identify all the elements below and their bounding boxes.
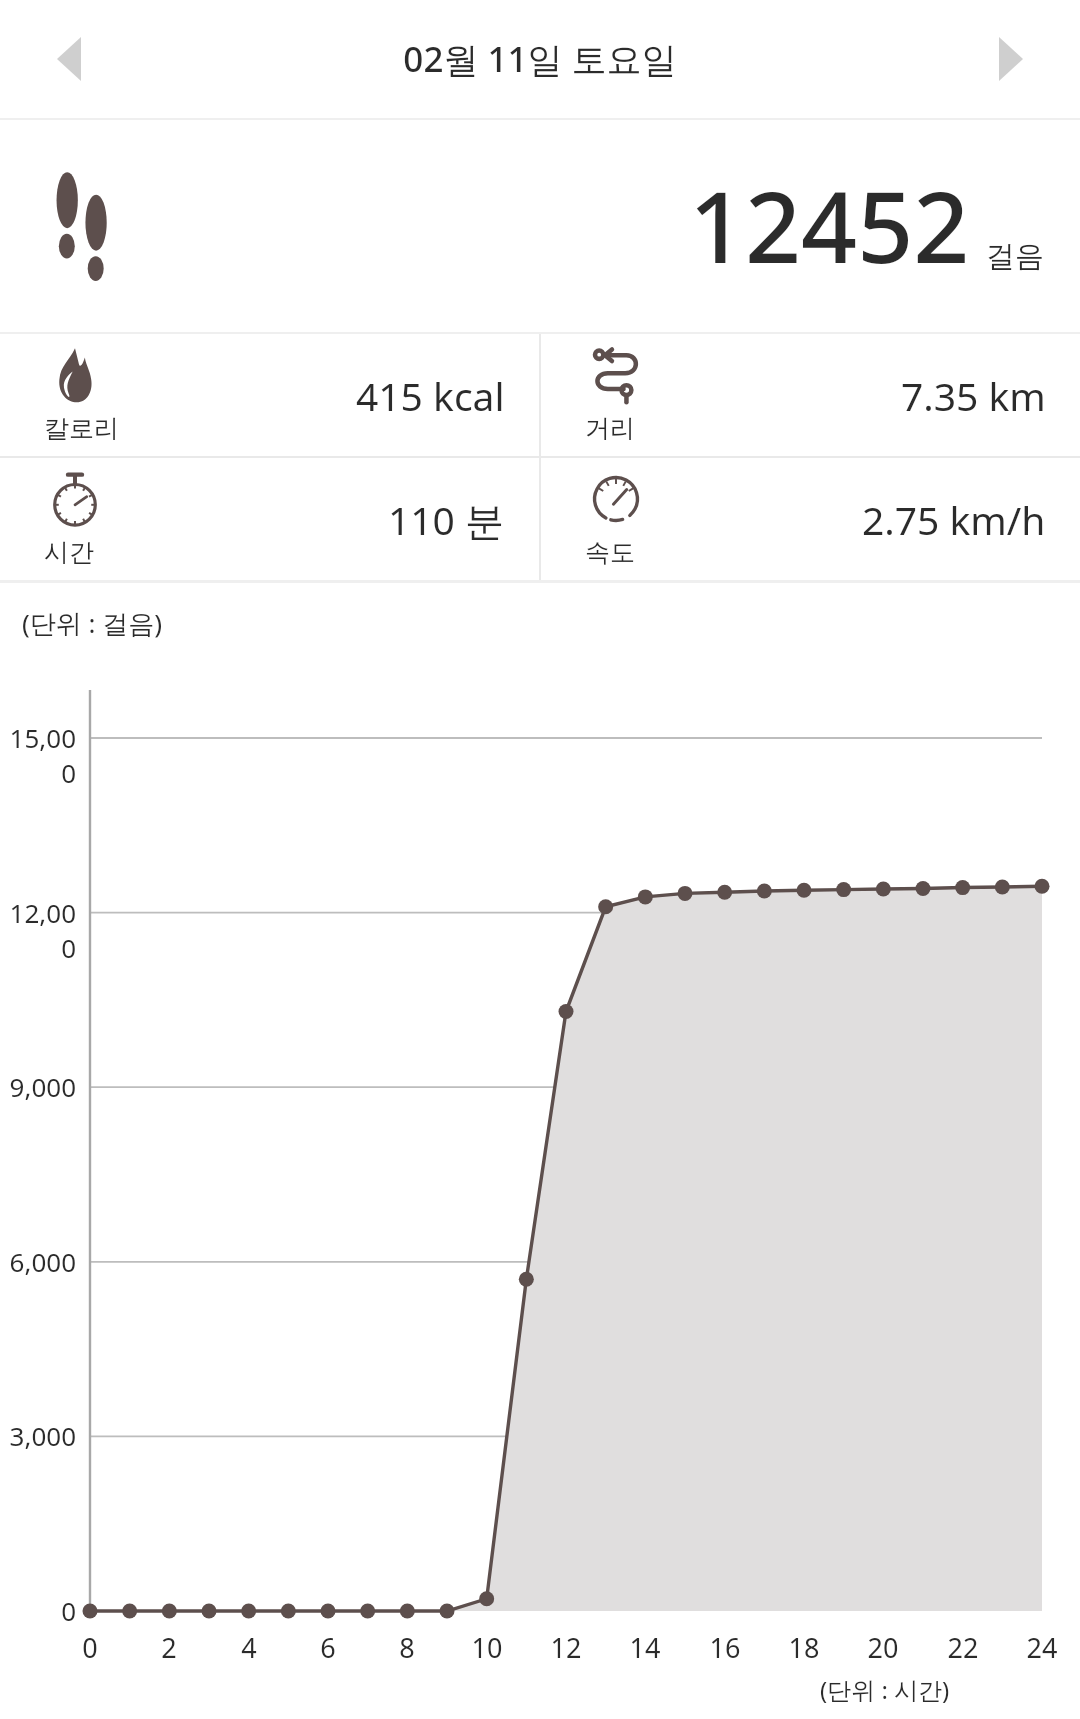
staticText: 칼로리	[44, 413, 119, 444]
staticText: 20	[853, 1629, 913, 1666]
staticText: 2	[139, 1629, 199, 1666]
staticText: 415 kcal	[356, 369, 505, 422]
staticText: 12,000	[0, 895, 76, 965]
staticText: 10	[457, 1629, 517, 1666]
staticText: 18	[774, 1629, 834, 1666]
staticText: 0	[0, 1593, 76, 1628]
button[interactable]: 속도	[541, 458, 1080, 580]
staticText: 16	[695, 1629, 755, 1666]
button[interactable]: 칼로리	[0, 334, 539, 456]
staticText: 9,000	[0, 1069, 76, 1104]
staticText: 7.35 km	[901, 369, 1046, 422]
staticText: 2.75 km/h	[862, 493, 1046, 546]
staticText: 시간	[44, 537, 94, 568]
button[interactable]: Previous day	[38, 28, 100, 90]
button[interactable]: 12452	[0, 120, 1080, 332]
staticText: (단위 : 시간)	[820, 1673, 950, 1706]
staticText: 12	[536, 1629, 596, 1666]
button[interactable]: Next day	[980, 28, 1042, 90]
staticText: 4	[219, 1629, 279, 1666]
staticText: 속도	[585, 537, 635, 568]
staticText: 6	[298, 1629, 358, 1666]
staticText: 3,000	[0, 1418, 76, 1453]
staticText: 8	[377, 1629, 437, 1666]
staticText: 110 분	[388, 493, 505, 546]
staticText: (단위 : 걸음)	[22, 605, 163, 641]
staticText: 12452	[689, 158, 970, 291]
button[interactable]: 시간	[0, 458, 539, 580]
staticText: 6,000	[0, 1244, 76, 1279]
staticText: 22	[933, 1629, 993, 1666]
staticText: 거리	[585, 413, 635, 444]
button[interactable]: 거리	[541, 334, 1080, 456]
staticText: 15,000	[0, 720, 76, 790]
staticText: 걸음	[986, 238, 1044, 275]
staticText: 14	[615, 1629, 675, 1666]
staticText: 24	[1012, 1629, 1072, 1666]
staticText: 0	[60, 1629, 120, 1666]
staticText: 02월 11일 토요일	[403, 35, 677, 83]
